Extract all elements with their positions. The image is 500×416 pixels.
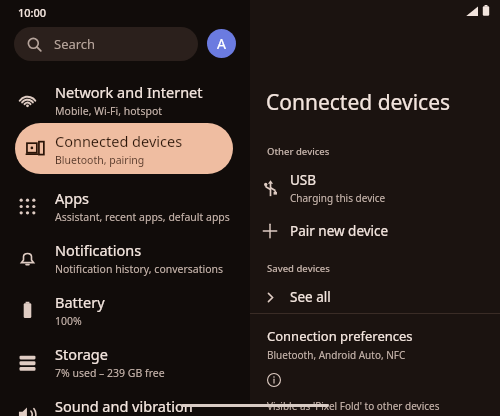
staticText: A: [217, 34, 226, 53]
button[interactable]: USB: [250, 168, 500, 208]
staticText: Connected devices: [55, 131, 183, 151]
staticText: 10:00: [18, 5, 47, 20]
button[interactable]: Connection preferences: [250, 322, 500, 367]
staticText: Visible as 'Pixel Fold' to other devices: [267, 399, 440, 413]
staticText: Charging this device: [290, 191, 386, 205]
button[interactable]: Pair new device: [250, 215, 500, 247]
staticText: Storage: [55, 344, 108, 364]
staticText: Notification history, conversations: [55, 262, 224, 276]
staticText: Network and Internet: [55, 82, 203, 102]
staticText: Connection preferences: [267, 327, 413, 345]
staticText: Assistant, recent apps, default apps: [55, 210, 230, 224]
staticText: Search: [54, 35, 96, 53]
button[interactable]: See all: [250, 283, 500, 311]
staticText: Sound and vibration: [55, 396, 193, 416]
button[interactable]: Storage: [0, 338, 250, 386]
staticText: Connected devices: [266, 88, 451, 117]
staticText: Bluetooth, Android Auto, NFC: [267, 348, 406, 362]
staticText: Saved devices: [267, 262, 330, 275]
staticText: See all: [290, 288, 331, 306]
staticText: Mobile, Wi-Fi, hotspot: [55, 104, 163, 118]
button[interactable]: Notifications: [0, 234, 250, 282]
button[interactable]: Connected devices: [15, 123, 233, 174]
staticText: Notifications: [55, 240, 142, 260]
staticText: Battery: [55, 292, 105, 312]
button[interactable]: Sound and vibration: [0, 390, 250, 416]
button[interactable]: Account: [207, 29, 236, 58]
staticText: 7% used – 239 GB free: [55, 366, 165, 380]
staticText: USB: [290, 171, 317, 189]
button[interactable]: Battery: [0, 286, 250, 334]
button[interactable]: Network and Internet: [0, 76, 250, 124]
staticText: 100%: [55, 314, 82, 328]
button[interactable]: Apps: [0, 182, 250, 230]
staticText: Other devices: [267, 145, 330, 158]
button[interactable]: Search: [14, 27, 198, 61]
staticText: Bluetooth, pairing: [55, 153, 145, 167]
staticText: Apps: [55, 188, 90, 208]
staticText: Pair new device: [290, 222, 389, 240]
